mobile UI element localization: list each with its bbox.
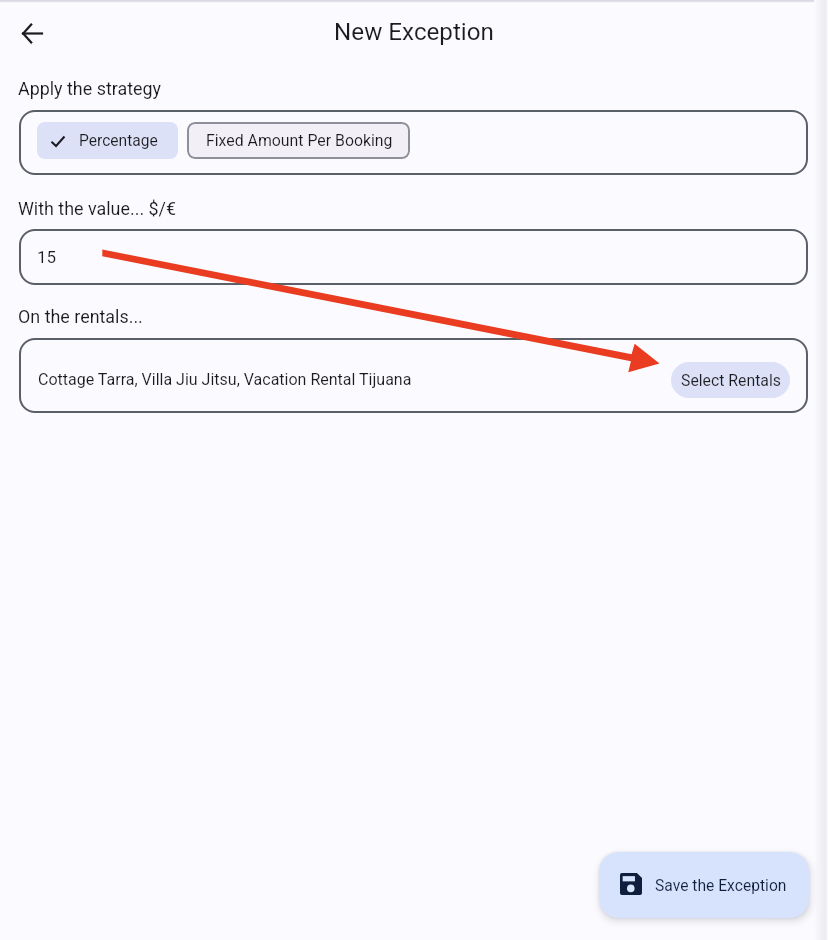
- staticText: Save the Exception: [655, 876, 787, 894]
- staticText: Fixed Amount Per Booking: [206, 131, 393, 150]
- button[interactable]: 15: [19, 229, 808, 285]
- staticText: Apply the strategy: [18, 78, 162, 99]
- staticText: With the value... $/€: [18, 198, 177, 219]
- button[interactable]: Fixed Amount Per Booking: [187, 122, 410, 159]
- staticText: Cottage Tarra, Villa Jiu Jitsu, Vacation…: [38, 370, 412, 389]
- staticText: Select Rentals: [681, 371, 781, 390]
- staticText: Percentage: [79, 132, 158, 150]
- button[interactable]: Save the Exception: [599, 852, 809, 918]
- button[interactable]: Select Rentals: [671, 362, 790, 398]
- button[interactable]: Percentage: [37, 122, 178, 159]
- staticText: New Exception: [0, 18, 828, 46]
- staticText: 15: [37, 247, 57, 267]
- button[interactable]: Back: [13, 14, 51, 52]
- staticText: On the rentals...: [18, 306, 143, 327]
